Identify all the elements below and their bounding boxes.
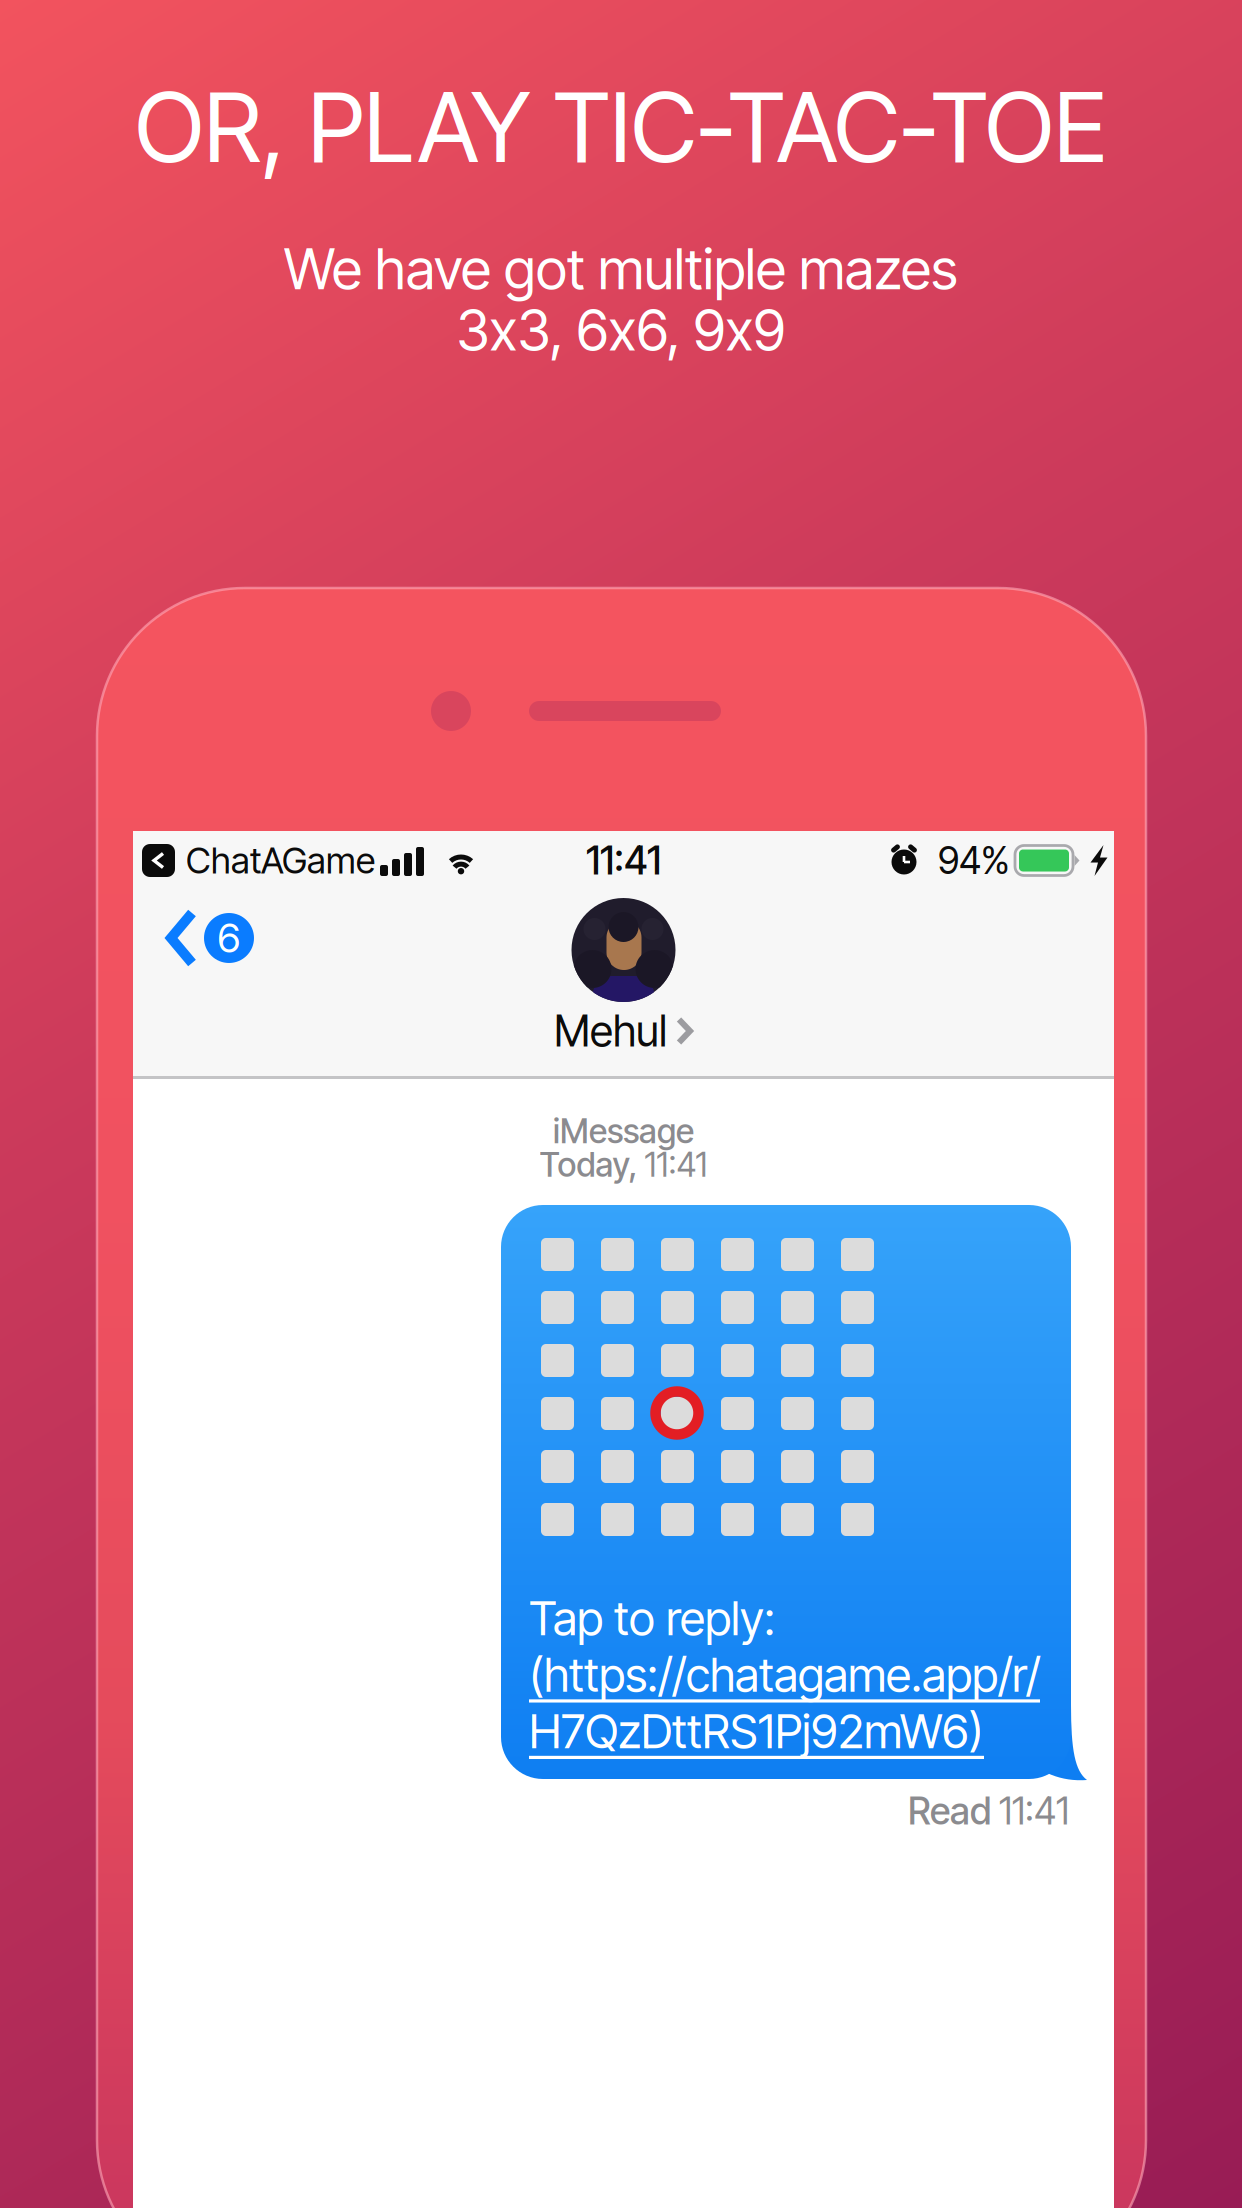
staticText: ChatAGame	[186, 839, 375, 882]
button[interactable]: Mehul, contact details	[463, 898, 783, 1053]
staticText: 11:41	[586, 837, 661, 884]
button[interactable]: Back to ChatAGame	[142, 829, 375, 892]
staticText: H7QzDttRS1Pj92mW6)	[529, 1703, 984, 1759]
staticText: 6	[217, 914, 240, 962]
staticText: OR, PLAY TIC-TAC-TOE	[135, 69, 1107, 185]
staticText: 94%	[938, 838, 1010, 883]
staticText: Mehul	[554, 1005, 667, 1057]
staticText: Today, 11:41	[539, 1145, 707, 1184]
staticText: (https://chatagame.app/r/	[529, 1646, 1040, 1703]
button[interactable]: Back, 6 unread conversations	[154, 898, 266, 978]
staticText: Tap to reply:	[529, 1590, 775, 1646]
staticText: iMessage	[553, 1111, 694, 1151]
staticText: We have got multiple mazes	[284, 235, 958, 303]
staticText: 3x3, 6x6, 9x9	[456, 297, 785, 363]
staticText: Read 11:41	[908, 1789, 1069, 1833]
